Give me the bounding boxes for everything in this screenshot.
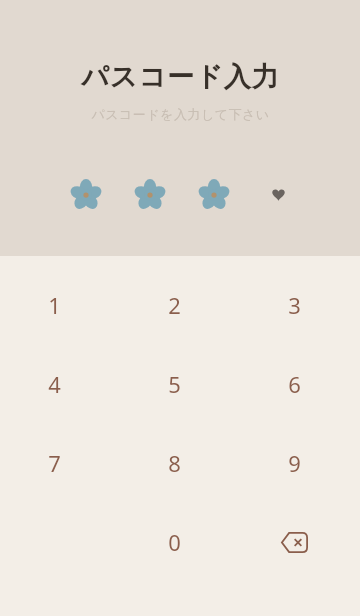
button[interactable]: 3 <box>259 270 329 340</box>
button[interactable]: 8 <box>139 428 209 498</box>
button[interactable]: 9 <box>259 428 329 498</box>
staticText: 9 <box>288 448 301 478</box>
button[interactable]: 4 <box>19 349 89 419</box>
staticText: 7 <box>48 448 61 478</box>
button[interactable]: 0 <box>139 507 209 577</box>
staticText: 6 <box>288 369 301 399</box>
staticText: 0 <box>168 527 181 557</box>
button[interactable]: 1 <box>19 270 89 340</box>
staticText: 1 <box>48 290 61 320</box>
staticText: 2 <box>168 290 181 320</box>
button[interactable]: 7 <box>19 428 89 498</box>
button[interactable]: Delete <box>259 507 329 577</box>
staticText: 8 <box>168 448 181 478</box>
button[interactable]: 2 <box>139 270 209 340</box>
staticText: パスコード入力 <box>81 60 280 94</box>
button[interactable]: 5 <box>139 349 209 419</box>
staticText: パスコードを入力して下さい <box>91 106 270 122</box>
staticText: 4 <box>48 369 61 399</box>
staticText: 3 <box>288 290 301 320</box>
staticText: 5 <box>168 369 181 399</box>
button[interactable]: 6 <box>259 349 329 419</box>
